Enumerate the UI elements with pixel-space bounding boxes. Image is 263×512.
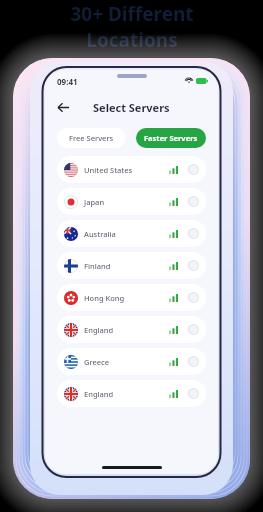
staticText: 30+ Different xyxy=(70,1,194,27)
staticText: Finland xyxy=(84,261,169,271)
button[interactable]: Japan xyxy=(57,188,206,215)
button[interactable]: Free Servers xyxy=(57,128,126,148)
staticText: Australia xyxy=(84,229,169,239)
staticText: United States xyxy=(84,165,169,175)
staticText: Select Servers xyxy=(93,100,170,115)
staticText: Faster Servers xyxy=(144,133,198,143)
button[interactable]: Hong Kong xyxy=(57,284,206,311)
button[interactable]: Back xyxy=(53,97,73,117)
button[interactable]: Finland xyxy=(57,252,206,279)
button[interactable]: England xyxy=(57,316,206,343)
staticText: England xyxy=(84,325,169,335)
staticText: Locations xyxy=(86,27,178,53)
button[interactable]: United States xyxy=(57,156,206,183)
staticText: Japan xyxy=(84,197,169,207)
staticText: 09:41 xyxy=(57,76,78,87)
staticText: Hong Kong xyxy=(84,293,169,303)
button[interactable]: Greece xyxy=(57,348,206,375)
staticText: England xyxy=(84,389,169,399)
button[interactable]: Australia xyxy=(57,220,206,247)
staticText: Free Servers xyxy=(69,133,114,143)
staticText: Greece xyxy=(84,357,169,367)
button[interactable]: England xyxy=(57,380,206,407)
button[interactable]: Faster Servers xyxy=(136,128,206,148)
